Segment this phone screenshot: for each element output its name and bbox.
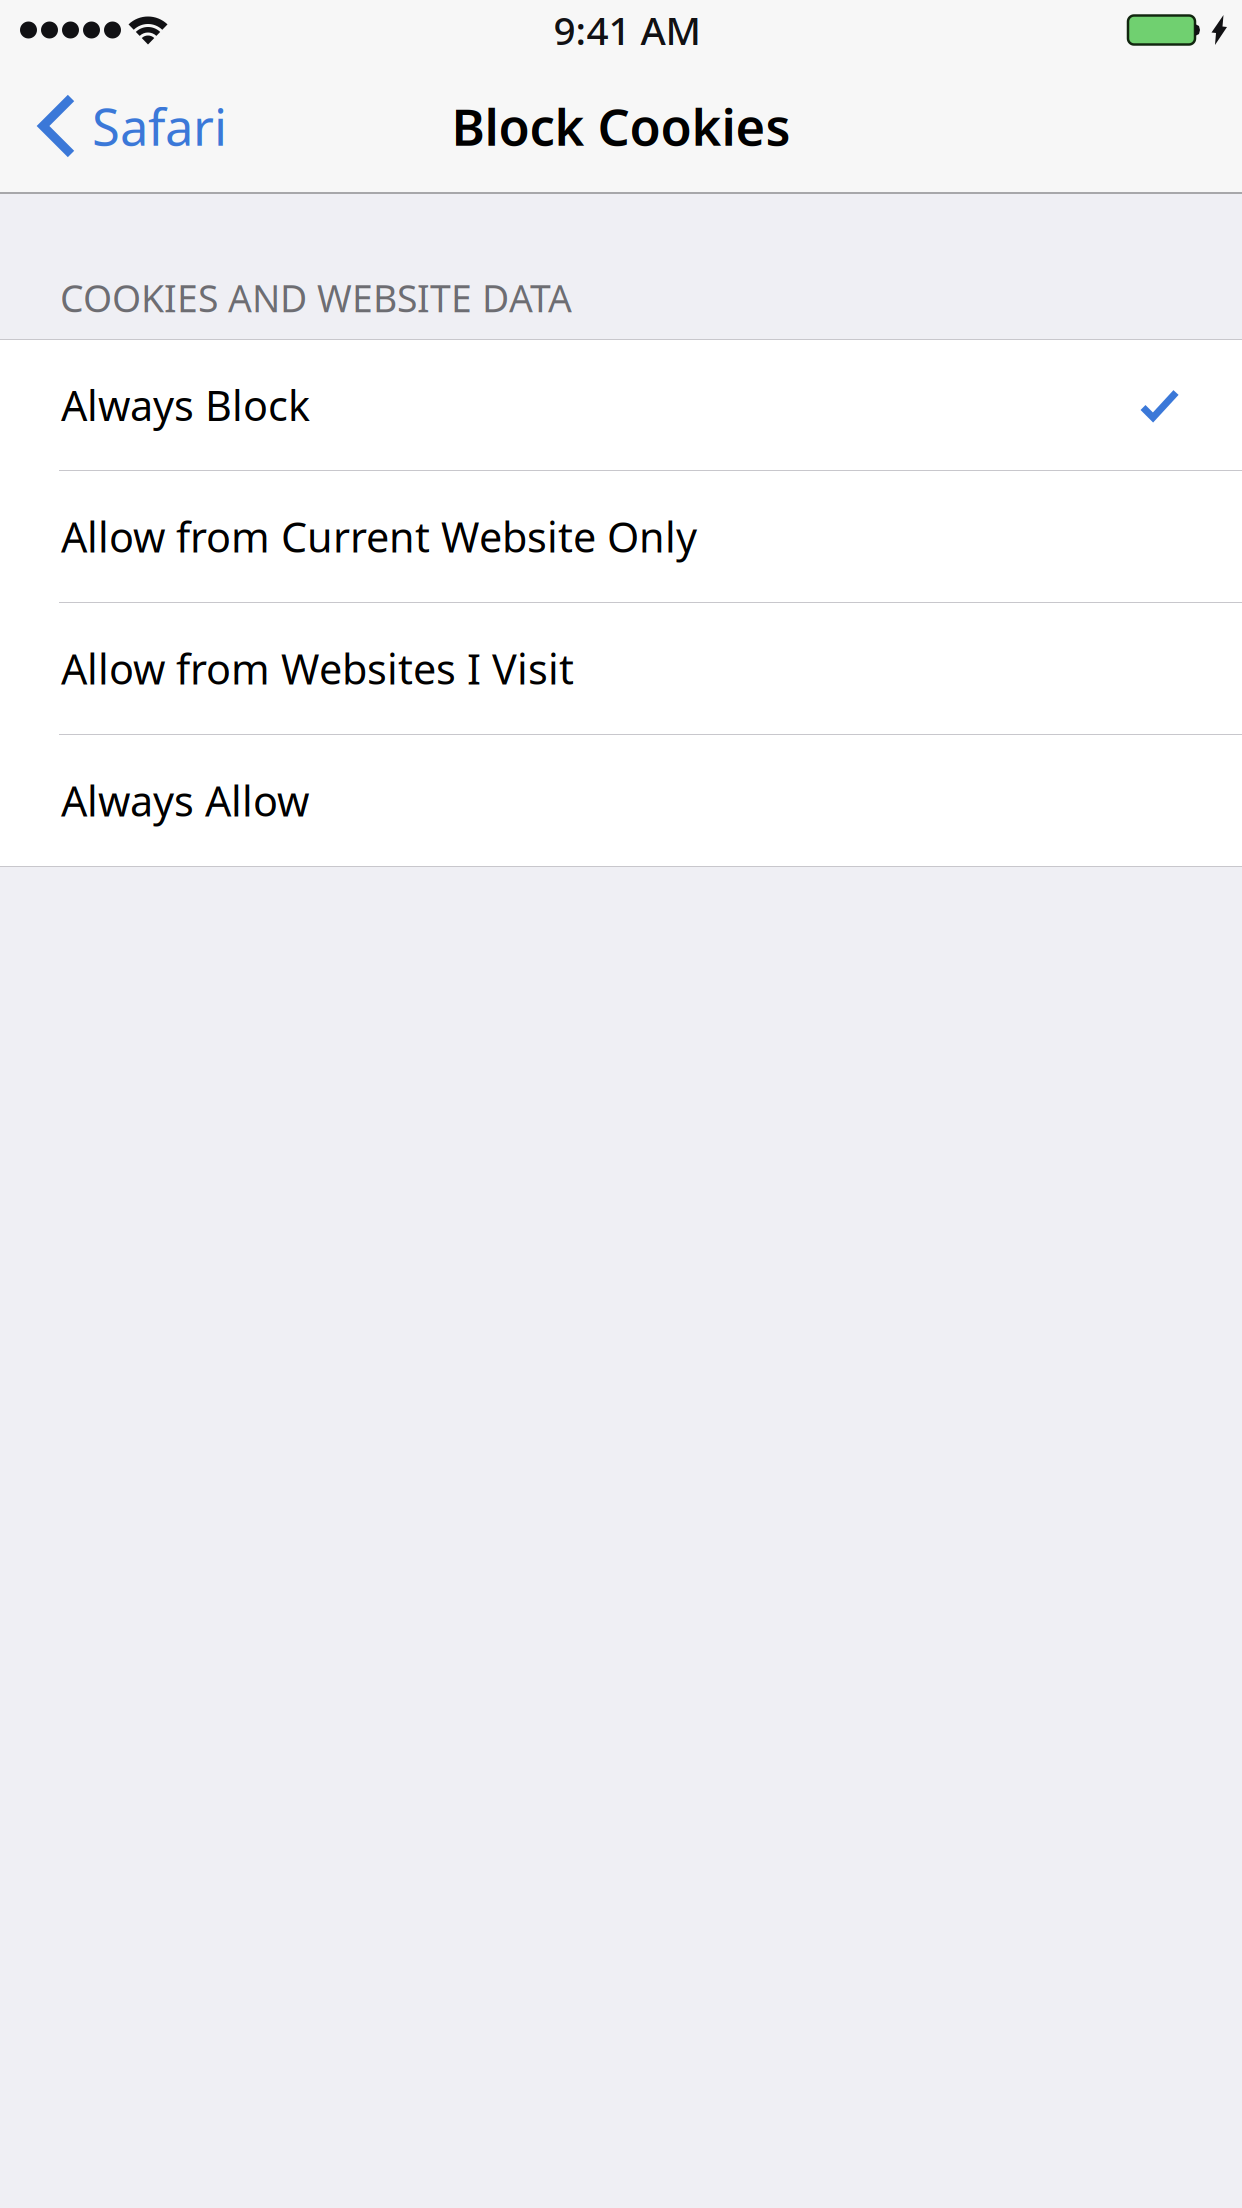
button[interactable]: Always Block: [0, 340, 1242, 470]
staticText: Safari: [92, 92, 227, 160]
staticText: Allow from Current Website Only: [61, 509, 697, 564]
staticText: Block Cookies: [451, 92, 790, 160]
button[interactable]: Always Allow: [0, 735, 1242, 866]
button[interactable]: Allow from Current Website Only: [0, 471, 1242, 602]
staticText: Allow from Websites I Visit: [61, 641, 574, 696]
button[interactable]: Allow from Websites I Visit: [0, 603, 1242, 734]
staticText: Always Allow: [61, 773, 309, 828]
button[interactable]: Back to Safari: [0, 60, 249, 192]
staticText: Always Block: [61, 378, 310, 432]
staticText: 9:41 AM: [553, 4, 700, 56]
staticText: COOKIES AND WEBSITE DATA: [60, 273, 572, 323]
